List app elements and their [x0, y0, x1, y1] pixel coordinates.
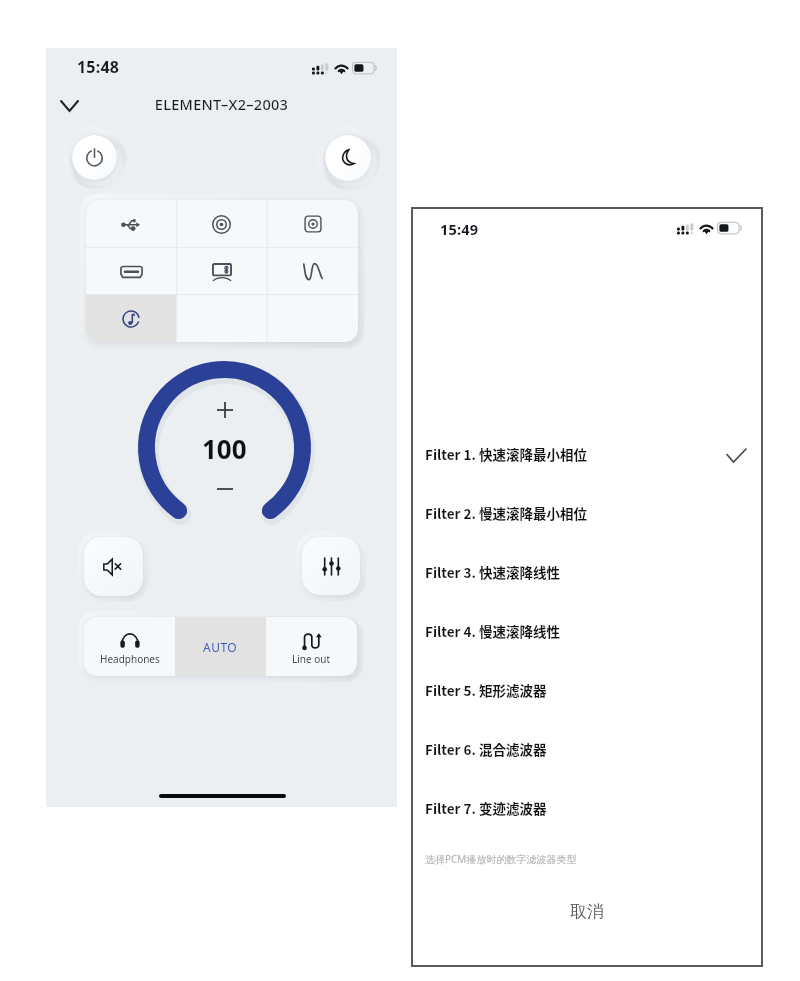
button[interactable]: Line out output	[266, 617, 357, 676]
button[interactable]: Volume down	[205, 469, 245, 509]
button[interactable]: Filter 4. 慢速滚降线性	[411, 601, 763, 660]
button[interactable]: Auto output	[175, 617, 266, 676]
button[interactable]: Equalizer	[302, 537, 360, 595]
button[interactable]: PC input	[176, 248, 267, 295]
button[interactable]: Filter 6. 混合滤波器	[411, 719, 763, 778]
button[interactable]: Night mode	[325, 135, 371, 181]
staticText: Filter 4. 慢速滚降线性	[425, 621, 560, 641]
staticText: 15:49	[440, 219, 479, 239]
staticText: AUTO	[203, 639, 238, 655]
staticText: 15:48	[77, 56, 120, 78]
button[interactable]: Power	[72, 135, 117, 180]
staticText: Filter 5. 矩形滤波器	[425, 680, 547, 700]
staticText: 取消	[570, 901, 604, 922]
staticText: Filter 6. 混合滤波器	[425, 739, 547, 759]
button[interactable]: Filter 3. 快速滚降线性	[411, 542, 763, 601]
button[interactable]: Filter 5. 矩形滤波器	[411, 660, 763, 719]
staticText: ELEMENT–X2–2003	[46, 94, 397, 114]
button[interactable]: Volume up	[205, 390, 245, 430]
button[interactable]: Filter 1. 快速滚降最小相位	[411, 424, 763, 483]
staticText: Filter 7. 变迹滤波器	[425, 798, 547, 818]
button[interactable]: Mute	[84, 537, 143, 596]
button[interactable]: Coaxial input	[176, 200, 267, 248]
button[interactable]: Empty slot	[267, 295, 358, 342]
staticText: Line out	[292, 652, 331, 666]
staticText: Filter 2. 慢速滚降最小相位	[425, 503, 587, 523]
staticText: Filter 1. 快速滚降最小相位	[425, 444, 587, 464]
button[interactable]: Line input	[267, 248, 358, 295]
button[interactable]: Headphones output	[84, 617, 175, 676]
button[interactable]: Bluetooth input	[86, 295, 176, 342]
staticText: Headphones	[100, 652, 160, 666]
button[interactable]: Filter 2. 慢速滚降最小相位	[411, 483, 763, 542]
button[interactable]: 取消	[411, 881, 763, 941]
button[interactable]: USB input	[86, 200, 176, 248]
button[interactable]: Filter 7. 变迹滤波器	[411, 778, 763, 837]
button[interactable]: Optical input	[267, 200, 358, 248]
staticText: 选择PCM播放时的数字滤波器类型	[425, 852, 577, 866]
button[interactable]: Collapse	[51, 92, 87, 120]
button[interactable]: HDMI input	[86, 248, 176, 295]
staticText: 100	[202, 431, 247, 466]
staticText: Filter 3. 快速滚降线性	[425, 562, 560, 582]
